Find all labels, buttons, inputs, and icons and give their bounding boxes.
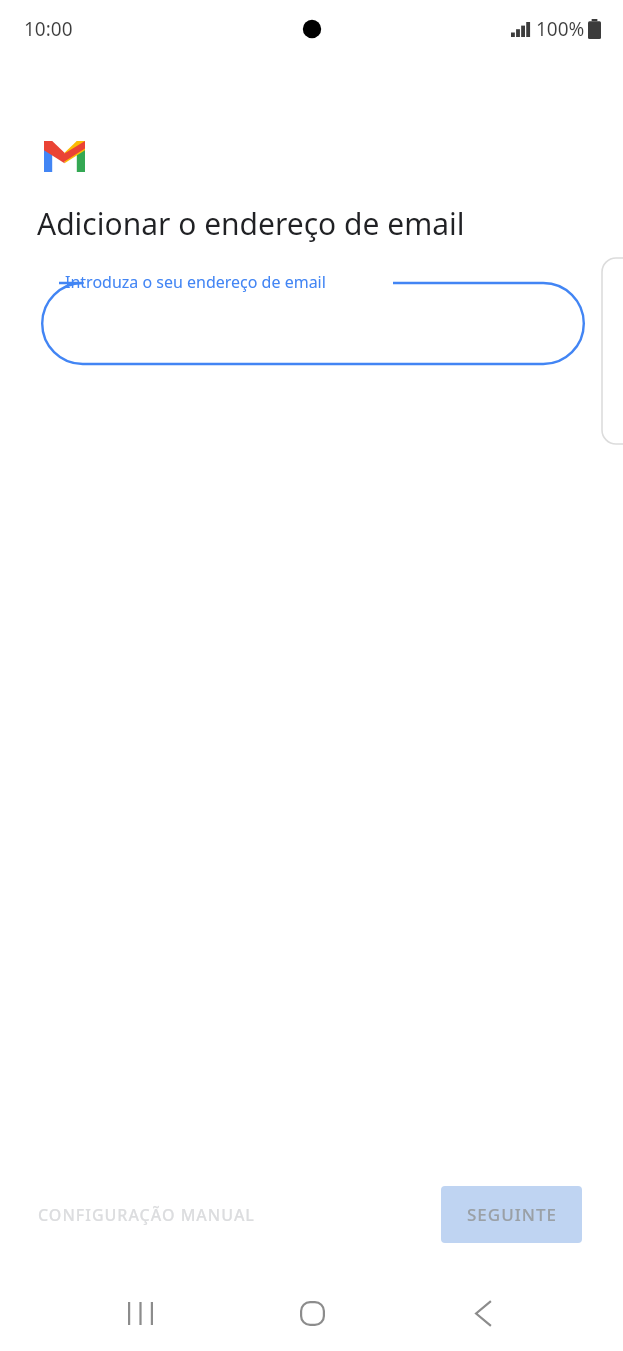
button[interactable]: SEGUINTE xyxy=(441,1186,582,1243)
staticText: 10:00 xyxy=(24,16,73,42)
button[interactable]: Back xyxy=(439,1275,527,1351)
button[interactable]: Recent apps xyxy=(96,1275,184,1351)
button[interactable]: Home xyxy=(268,1275,356,1351)
button[interactable]: Introduza o seu endereço de email xyxy=(41,266,585,378)
staticText: SEGUINTE xyxy=(467,1203,557,1226)
staticText: Introduza o seu endereço de email xyxy=(65,271,326,293)
staticText: CONFIGURAÇÃO MANUAL xyxy=(38,1204,255,1226)
button[interactable]: CONFIGURAÇÃO MANUAL xyxy=(20,1190,273,1240)
staticText: 100% xyxy=(536,16,585,42)
staticText: Adicionar o endereço de email xyxy=(37,203,465,244)
